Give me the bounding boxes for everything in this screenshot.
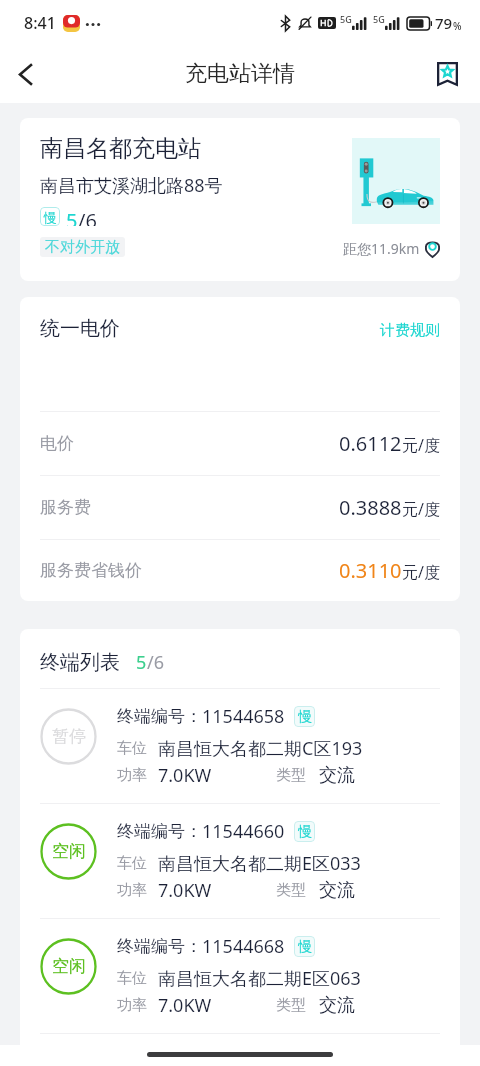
staticText: 交流 xyxy=(319,764,355,787)
button[interactable]: 计费规则 xyxy=(376,317,444,344)
staticText: 服务费省钱价 xyxy=(40,560,142,581)
staticText: 11544668 xyxy=(202,934,285,959)
staticText: 慢 xyxy=(298,938,312,956)
staticText: 类型 xyxy=(276,766,306,785)
staticText: 终端编号： xyxy=(117,936,202,957)
staticText: 慢 xyxy=(298,708,312,726)
staticText: 功率 xyxy=(117,766,147,785)
staticText: 不对外开放 xyxy=(45,238,120,257)
staticText: 元/度 xyxy=(402,498,440,520)
staticText: 慢 xyxy=(298,823,312,841)
staticText: 元/度 xyxy=(402,434,440,456)
staticText: 交流 xyxy=(319,994,355,1017)
staticText: 空闲 xyxy=(52,841,86,862)
staticText: 0.3888 xyxy=(339,494,402,521)
staticText: 计费规则 xyxy=(380,321,440,340)
staticText: 功率 xyxy=(117,996,147,1015)
staticText: 7.0KW xyxy=(158,763,212,788)
staticText: 79 xyxy=(435,13,453,33)
staticText: 南昌恒大名都二期E区063 xyxy=(158,966,361,991)
staticText: 类型 xyxy=(276,881,306,900)
staticText: 元/度 xyxy=(402,561,440,583)
staticText: 终端编号： xyxy=(117,821,202,842)
staticText: % xyxy=(453,19,462,33)
staticText: 11544660 xyxy=(202,819,285,844)
staticText: /6 xyxy=(78,207,97,226)
staticText: 慢 xyxy=(44,209,57,225)
button[interactable]: 暂停 xyxy=(20,689,460,803)
staticText: 5 xyxy=(136,650,147,675)
staticText: 充电站详情 xyxy=(185,60,295,88)
staticText: 南昌市艾溪湖北路88号 xyxy=(40,173,223,198)
staticText: 空闲 xyxy=(52,956,86,977)
staticText: 5G xyxy=(373,13,385,25)
staticText: 南昌恒大名都二期E区033 xyxy=(158,851,361,876)
button[interactable]: 空闲 xyxy=(20,919,460,1033)
staticText: 0.3110 xyxy=(339,557,402,584)
staticText: 11544658 xyxy=(202,704,285,729)
staticText: 服务费 xyxy=(40,497,91,518)
staticText: 电价 xyxy=(40,433,74,454)
staticText: 8:41 xyxy=(24,12,56,34)
staticText: 距您11.9km xyxy=(343,239,420,258)
button[interactable]: Back xyxy=(0,49,50,99)
button[interactable]: Collect xyxy=(424,51,470,97)
staticText: 7.0KW xyxy=(158,878,212,903)
staticText: 功率 xyxy=(117,881,147,900)
button[interactable]: 南昌名都充电站 xyxy=(20,118,460,281)
staticText: 暂停 xyxy=(52,726,86,747)
staticText: 5G xyxy=(340,13,352,25)
staticText: 南昌恒大名都二期C区193 xyxy=(158,736,363,761)
staticText: 统一电价 xyxy=(40,316,120,341)
staticText: 7.0KW xyxy=(158,993,212,1018)
button[interactable]: 空闲 xyxy=(20,804,460,918)
staticText: 车位 xyxy=(117,739,147,758)
staticText: 车位 xyxy=(117,854,147,873)
staticText: 南昌名都充电站 xyxy=(40,134,201,163)
staticText: /6 xyxy=(147,650,164,675)
staticText: 0.6112 xyxy=(339,430,402,457)
staticText: 终端编号： xyxy=(117,706,202,727)
staticText: 车位 xyxy=(117,969,147,988)
staticText: 终端列表 xyxy=(40,650,120,675)
staticText: 交流 xyxy=(319,879,355,902)
staticText: 类型 xyxy=(276,996,306,1015)
staticText: 5 xyxy=(66,207,78,226)
